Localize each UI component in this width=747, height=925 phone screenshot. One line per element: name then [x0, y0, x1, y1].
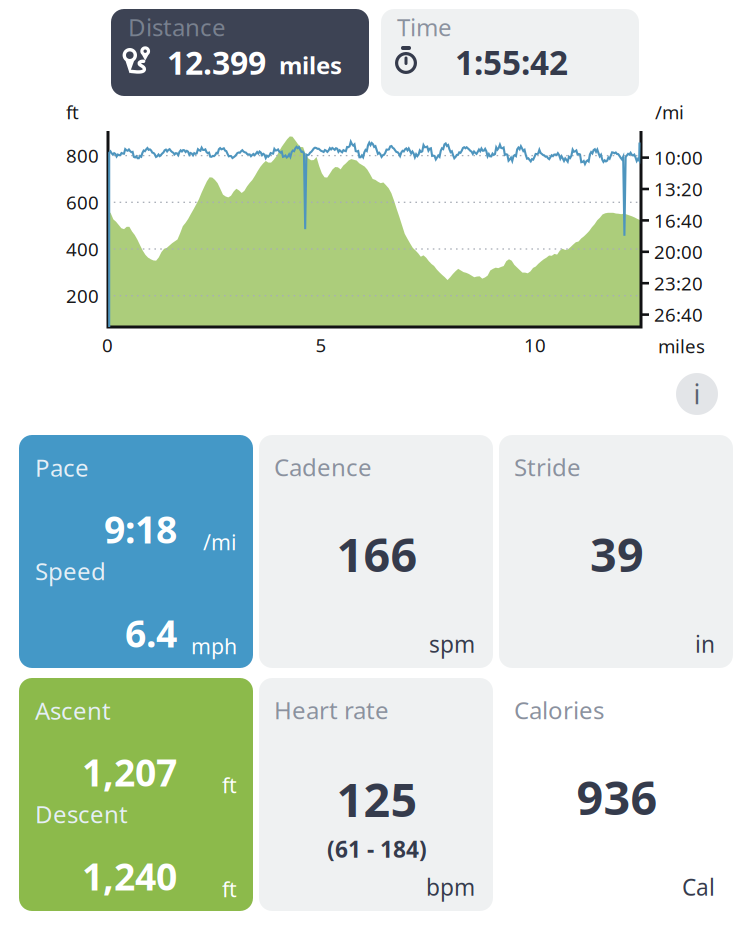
staticText: bpm — [426, 872, 475, 902]
staticText: 26:40 — [654, 302, 703, 327]
staticText: 10:00 — [654, 145, 703, 170]
button[interactable]: Workout info — [676, 373, 718, 415]
staticText: Heart rate — [274, 694, 389, 726]
staticText: ft — [222, 875, 237, 903]
button[interactable]: Pace — [19, 435, 253, 668]
staticText: 600 — [66, 190, 99, 215]
staticText: ft — [66, 100, 79, 124]
staticText: Cadence — [274, 451, 372, 483]
button[interactable]: Ascent — [19, 678, 253, 911]
staticText: 20:00 — [654, 239, 703, 264]
button[interactable]: Distance — [111, 9, 369, 96]
staticText: 1,240 — [82, 851, 177, 901]
button[interactable]: Calories — [499, 678, 733, 911]
staticText: 800 — [66, 143, 99, 168]
button[interactable]: Stride — [499, 435, 733, 668]
button[interactable]: Cadence — [259, 435, 493, 668]
staticText: 12.399 — [167, 41, 266, 83]
button[interactable]: Time — [381, 9, 639, 96]
staticText: Cal — [682, 872, 715, 902]
staticText: mph — [191, 632, 237, 660]
staticText: (61 - 184) — [327, 834, 427, 864]
staticText: Distance — [128, 11, 226, 43]
staticText: 6.4 — [125, 608, 177, 658]
staticText: Descent — [35, 798, 128, 830]
staticText: /mi — [203, 528, 237, 556]
staticText: 23:20 — [654, 271, 703, 296]
staticText: Ascent — [35, 694, 111, 726]
staticText: 9:18 — [104, 504, 177, 554]
staticText: miles — [279, 49, 342, 81]
staticText: 10 — [524, 333, 546, 357]
staticText: 13:20 — [654, 177, 703, 201]
staticText: 400 — [66, 237, 99, 261]
staticText: spm — [429, 629, 475, 659]
staticText: 1:55:42 — [455, 40, 568, 84]
staticText: /mi — [655, 100, 684, 124]
button[interactable]: Heart rate — [259, 678, 493, 911]
staticText: 39 — [590, 523, 644, 585]
staticText: in — [695, 629, 715, 659]
staticText: Calories — [514, 694, 604, 726]
staticText: 0 — [102, 333, 113, 357]
staticText: ft — [222, 771, 237, 799]
staticText: 125 — [336, 768, 417, 830]
staticText: Stride — [514, 451, 581, 483]
staticText: 16:40 — [654, 208, 703, 233]
staticText: 936 — [576, 766, 657, 828]
staticText: Pace — [35, 451, 89, 483]
staticText: 5 — [315, 333, 326, 357]
staticText: 166 — [336, 523, 417, 585]
staticText: 1,207 — [82, 747, 177, 797]
staticText: i — [693, 376, 700, 412]
staticText: 200 — [66, 283, 99, 308]
staticText: miles — [658, 334, 705, 358]
staticText: Time — [397, 11, 452, 43]
staticText: Speed — [35, 555, 106, 587]
